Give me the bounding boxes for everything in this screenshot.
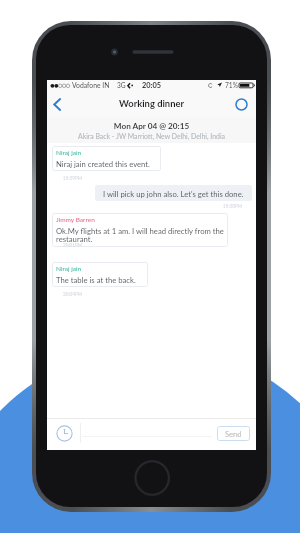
staticText: The table is at the back.	[56, 275, 136, 284]
staticText: Niraj jain	[56, 265, 82, 273]
button[interactable]: Jimmy Barren	[52, 213, 228, 247]
staticText: 20:04PM	[63, 291, 83, 297]
button[interactable]: Niraj jain	[52, 146, 161, 171]
staticText: Mon Apr 04 @ 20:15	[47, 121, 256, 131]
staticText: 3G	[117, 81, 126, 89]
staticText: Ok.My flights at 1 am. I will head direc…	[56, 226, 225, 244]
staticText: 71%	[225, 81, 238, 89]
staticText: Niraj jain created this event.	[56, 159, 150, 168]
staticText: Working dinner	[47, 98, 256, 109]
staticText: 19:59PM	[63, 175, 83, 181]
staticText: Send	[225, 429, 242, 438]
staticText: Vodafone IN	[72, 81, 110, 89]
staticText: Akira Back - JW Marriott, New Delhi, Del…	[47, 132, 256, 140]
staticText: Jimmy Barren	[56, 216, 95, 224]
button[interactable]: Schedule	[55, 424, 73, 442]
staticText: 20:05	[142, 81, 162, 90]
staticText: 19:58PM	[223, 203, 243, 209]
button[interactable]: Back	[47, 92, 67, 116]
staticText: I will pick up john also. Let's get this…	[103, 189, 244, 198]
button[interactable]: Event status	[230, 92, 252, 116]
staticText: Niraj jain	[56, 149, 82, 157]
button[interactable]: Send	[217, 426, 250, 441]
button[interactable]: I will pick up john also. Let's get this…	[95, 185, 252, 201]
staticText: 20:01PM	[63, 242, 83, 248]
button[interactable]: Niraj jain	[52, 262, 148, 287]
